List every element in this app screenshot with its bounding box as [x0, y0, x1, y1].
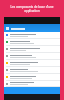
button[interactable]: [4, 60, 60, 67]
button[interactable]: [4, 53, 60, 60]
staticText: Les composants de base d'une application: [4, 5, 60, 13]
button[interactable]: [4, 67, 60, 74]
button[interactable]: [4, 39, 60, 46]
button[interactable]: [4, 32, 60, 39]
button[interactable]: [4, 46, 60, 53]
button[interactable]: [4, 74, 60, 81]
button[interactable]: [4, 81, 60, 87]
